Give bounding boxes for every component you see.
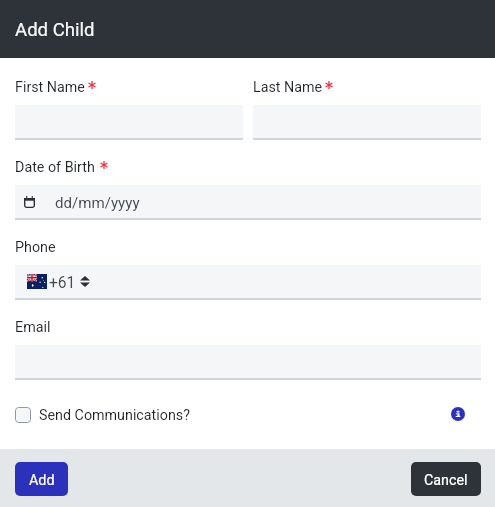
- staticText: Phone: [15, 239, 56, 256]
- staticText: dd/mm/yyyy: [55, 194, 140, 212]
- staticText: Email: [15, 319, 51, 336]
- button[interactable]: Information: [447, 403, 469, 425]
- staticText: Last Name: [253, 79, 323, 96]
- staticText: Add Child: [15, 19, 95, 41]
- button[interactable]: Add: [15, 462, 68, 496]
- staticText: Cancel: [424, 472, 468, 489]
- staticText: +61: [49, 274, 76, 292]
- staticText: Date of Birth: [15, 159, 95, 176]
- staticText: Add: [29, 472, 55, 489]
- button[interactable]: Cancel: [411, 462, 481, 496]
- button[interactable]: Send Communications?: [15, 405, 190, 425]
- staticText: Send Communications?: [39, 407, 190, 424]
- button[interactable]: +61: [15, 265, 481, 298]
- button[interactable]: dd/mm/yyyy: [15, 185, 481, 218]
- staticText: First Name: [15, 79, 85, 96]
